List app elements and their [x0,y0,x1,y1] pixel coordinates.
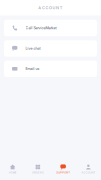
staticText: Live chat [25,46,40,51]
staticText: ACCOUNT [81,171,95,174]
button[interactable]: Live chat [4,40,97,57]
button[interactable]: HOME [0,162,25,175]
staticText: ACCOUNT [38,5,63,10]
staticText: Email us [25,67,39,71]
button[interactable]: SUPPORT [50,162,76,175]
button[interactable]: ORDERS [25,162,50,175]
staticText: SUPPORT [56,171,70,174]
staticText: HOME [9,171,17,174]
staticText: Call ServiceMarket [25,26,56,30]
button[interactable]: ACCOUNT [76,162,101,175]
button[interactable]: Call ServiceMarket [4,20,97,36]
staticText: ORDERS [32,171,44,174]
button[interactable]: Email us [4,61,97,77]
